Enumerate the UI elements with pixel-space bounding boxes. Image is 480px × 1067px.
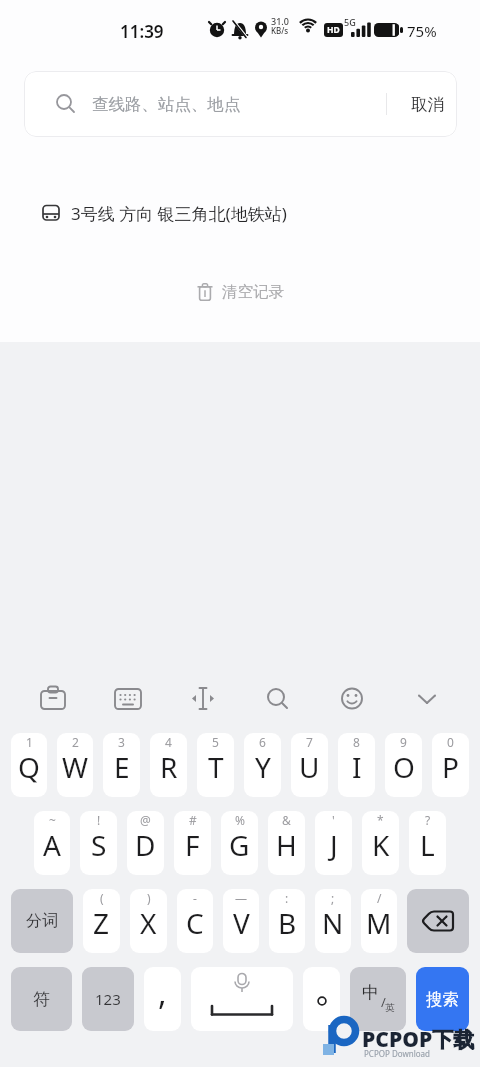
staticText: 4 — [165, 734, 172, 750]
button[interactable]: & — [268, 811, 305, 875]
button[interactable]: 123 — [82, 967, 134, 1031]
staticText: C — [186, 904, 204, 942]
button[interactable]: 符 — [11, 967, 72, 1031]
button[interactable] — [303, 967, 340, 1031]
button[interactable]: 6 — [244, 733, 281, 797]
staticText: Q — [18, 748, 40, 786]
button[interactable]: ! — [80, 811, 117, 875]
button[interactable]: 0 — [432, 733, 469, 797]
staticText: M — [366, 904, 392, 942]
button[interactable]: ~ — [34, 811, 70, 875]
staticText: 1 — [26, 734, 33, 750]
staticText: : — [285, 890, 289, 906]
staticText: Y — [255, 748, 271, 786]
staticText: 0 — [447, 734, 454, 750]
staticText: T — [208, 748, 224, 786]
staticText: G — [229, 826, 250, 864]
button[interactable]: 清空记录 — [187, 282, 294, 302]
staticText: 2 — [72, 734, 79, 750]
staticText: L — [420, 826, 435, 864]
staticText: ? — [425, 812, 431, 828]
staticText: V — [233, 904, 250, 942]
button[interactable]: 分词 — [11, 889, 73, 953]
button[interactable]: ? — [409, 811, 446, 875]
button[interactable]: 7 — [291, 733, 328, 797]
button[interactable]: , — [144, 967, 181, 1031]
staticText: ~ — [49, 812, 56, 828]
staticText: O — [393, 748, 415, 786]
staticText: PCPOP Download — [364, 1048, 430, 1059]
button[interactable]: 搜索 — [416, 967, 469, 1031]
staticText: & — [282, 812, 291, 828]
button[interactable]: % — [221, 811, 258, 875]
staticText: ) — [147, 890, 151, 906]
staticText: 5 — [212, 734, 219, 750]
button[interactable]: 取消 — [397, 71, 457, 137]
staticText: 符 — [33, 989, 50, 1010]
button[interactable]: 1 — [11, 733, 47, 797]
staticText: P — [442, 748, 459, 786]
button[interactable] — [181, 676, 225, 720]
staticText: J — [330, 826, 338, 864]
staticText: 查线路、站点、地点 — [92, 94, 241, 115]
staticText: 中 — [362, 982, 379, 1003]
staticText: — — [235, 890, 248, 906]
button[interactable]: 5 — [197, 733, 234, 797]
button[interactable]: @ — [127, 811, 164, 875]
button[interactable]: 4 — [150, 733, 187, 797]
button[interactable]: 中 — [350, 967, 406, 1031]
staticText: Z — [93, 904, 110, 942]
staticText: 75% — [407, 21, 437, 41]
button[interactable]: 查线路、站点、地点 — [24, 71, 457, 137]
button[interactable]: 2 — [57, 733, 93, 797]
staticText: U — [299, 748, 320, 786]
button[interactable]: : — [269, 889, 305, 953]
staticText: I — [352, 748, 362, 786]
button[interactable]: - — [177, 889, 213, 953]
button[interactable]: ) — [130, 889, 167, 953]
button[interactable]: — — [223, 889, 259, 953]
button[interactable]: 9 — [385, 733, 422, 797]
staticText: HD — [327, 24, 340, 36]
button[interactable]: 3号线 方向 银三角北(地铁站) — [0, 191, 480, 235]
button[interactable] — [191, 967, 293, 1031]
button[interactable] — [31, 676, 75, 720]
staticText: 6 — [259, 734, 266, 750]
staticText: ( — [100, 890, 104, 906]
button[interactable]: 3 — [103, 733, 140, 797]
staticText: K — [372, 826, 390, 864]
button[interactable]: ( — [83, 889, 120, 953]
staticText: 英 — [385, 1002, 395, 1014]
staticText: S — [91, 826, 107, 864]
button[interactable] — [255, 676, 299, 720]
staticText: 11:39 — [120, 20, 164, 43]
button[interactable]: # — [174, 811, 211, 875]
staticText: W — [62, 748, 89, 786]
button[interactable]: ' — [315, 811, 352, 875]
staticText: 9 — [400, 734, 407, 750]
button[interactable] — [405, 676, 449, 720]
staticText: % — [235, 812, 245, 828]
staticText: B — [278, 904, 297, 942]
staticText: * — [377, 812, 384, 828]
button[interactable]: * — [362, 811, 399, 875]
staticText: - — [193, 890, 197, 906]
staticText: 3 — [118, 734, 125, 750]
staticText: 分词 — [26, 911, 58, 931]
staticText: KB/s — [271, 25, 289, 36]
staticText: / — [377, 890, 382, 906]
button[interactable] — [330, 676, 374, 720]
staticText: 取消 — [411, 94, 444, 115]
button[interactable]: ; — [315, 889, 351, 953]
staticText: 123 — [95, 989, 121, 1009]
staticText: / — [381, 993, 386, 1011]
button[interactable] — [106, 676, 150, 720]
button[interactable]: 8 — [338, 733, 375, 797]
staticText: , — [158, 971, 167, 1015]
button[interactable]: / — [361, 889, 397, 953]
staticText: 3号线 方向 银三角北(地铁站) — [71, 202, 287, 225]
staticText: ! — [97, 812, 101, 828]
staticText: ; — [331, 890, 335, 906]
button[interactable] — [407, 889, 469, 953]
staticText: 清空记录 — [222, 282, 284, 302]
